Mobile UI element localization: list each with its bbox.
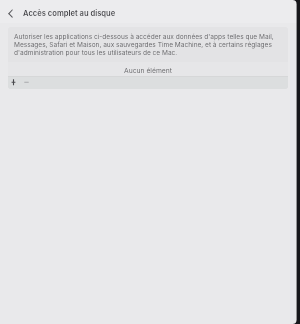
button[interactable]: Add xyxy=(8,77,19,89)
staticText: Autoriser les applications ci-dessous à … xyxy=(14,33,278,57)
button[interactable]: Remove xyxy=(19,77,34,89)
staticText: Aucun élément xyxy=(124,66,172,74)
staticText: Accès complet au disque xyxy=(23,9,116,18)
button[interactable]: Back xyxy=(0,0,19,23)
